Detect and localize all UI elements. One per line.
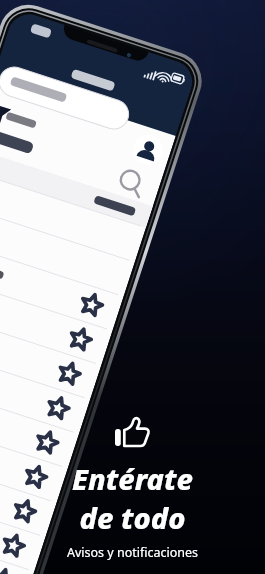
staticText: Avisos y notificaciones — [0, 544, 265, 561]
button[interactable]: Avisos y notificaciones — [0, 411, 265, 455]
staticText: Entérate — [0, 459, 265, 498]
staticText: de todo — [0, 498, 265, 537]
